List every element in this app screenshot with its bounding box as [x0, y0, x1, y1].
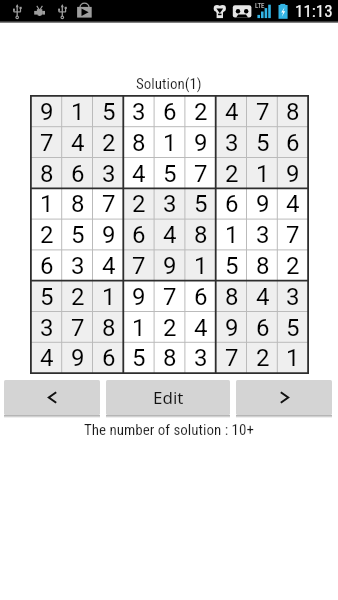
staticText: 1 — [225, 221, 239, 249]
staticText: 4 — [225, 98, 239, 126]
staticText: 8 — [163, 344, 177, 372]
button[interactable]: Edit — [106, 380, 230, 415]
staticText: 2 — [132, 190, 146, 218]
staticText: 3 — [163, 190, 177, 218]
staticText: Edit — [153, 386, 184, 409]
staticText: 7 — [71, 314, 85, 342]
staticText: 8 — [286, 98, 300, 126]
staticText: 1 — [256, 160, 270, 188]
staticText: 2 — [163, 314, 177, 342]
staticText: 9 — [40, 98, 54, 126]
staticText: 9 — [256, 190, 270, 218]
staticText: 9 — [225, 314, 239, 342]
staticText: 2 — [225, 160, 239, 188]
staticText: 9 — [286, 160, 300, 188]
staticText: 3 — [194, 344, 208, 372]
staticText: 8 — [194, 221, 208, 249]
staticText: The number of solution : 10+ — [84, 421, 254, 439]
staticText: 9 — [163, 252, 177, 280]
staticText: 6 — [102, 344, 116, 372]
staticText: 8 — [102, 314, 116, 342]
staticText: 2 — [256, 344, 270, 372]
staticText: 6 — [194, 283, 208, 311]
staticText: 4 — [194, 314, 208, 342]
staticText: 1 — [40, 190, 54, 218]
staticText: 6 — [256, 314, 270, 342]
staticText: 5 — [132, 344, 146, 372]
staticText: 5 — [40, 283, 54, 311]
staticText: 5 — [163, 160, 177, 188]
staticText: 3 — [40, 314, 54, 342]
staticText: 11:13 — [295, 1, 333, 21]
staticText: 4 — [71, 129, 85, 157]
staticText: 4 — [40, 344, 54, 372]
staticText: 7 — [225, 344, 239, 372]
staticText: 7 — [40, 129, 54, 157]
staticText: 7 — [132, 252, 146, 280]
staticText: 4 — [132, 160, 146, 188]
staticText: 3 — [225, 129, 239, 157]
staticText: 6 — [286, 129, 300, 157]
staticText: 2 — [71, 283, 85, 311]
staticText: Solution(1) — [136, 75, 202, 93]
staticText: 1 — [286, 344, 300, 372]
staticText: 3 — [71, 252, 85, 280]
staticText: 6 — [163, 98, 177, 126]
staticText: 1 — [163, 129, 177, 157]
staticText: 6 — [225, 190, 239, 218]
button[interactable]: Next solution — [236, 380, 332, 415]
staticText: 3 — [286, 283, 300, 311]
staticText: 3 — [132, 98, 146, 126]
staticText: 9 — [102, 221, 116, 249]
staticText: 8 — [256, 252, 270, 280]
staticText: 6 — [40, 252, 54, 280]
staticText: 5 — [71, 221, 85, 249]
button[interactable]: Previous solution — [4, 380, 100, 415]
staticText: 9 — [194, 129, 208, 157]
staticText: LTE — [255, 2, 265, 10]
staticText: 9 — [132, 283, 146, 311]
staticText: 1 — [102, 283, 116, 311]
staticText: 8 — [132, 129, 146, 157]
staticText: 6 — [71, 160, 85, 188]
staticText: 7 — [163, 283, 177, 311]
staticText: 7 — [286, 221, 300, 249]
staticText: 7 — [256, 98, 270, 126]
staticText: 1 — [194, 252, 208, 280]
staticText: 4 — [256, 283, 270, 311]
staticText: 8 — [225, 283, 239, 311]
staticText: 5 — [286, 314, 300, 342]
staticText: 4 — [286, 190, 300, 218]
staticText: 5 — [194, 190, 208, 218]
staticText: 4 — [163, 221, 177, 249]
staticText: 5 — [102, 98, 116, 126]
staticText: 6 — [132, 221, 146, 249]
staticText: 8 — [71, 190, 85, 218]
staticText: 8 — [40, 160, 54, 188]
staticText: 3 — [256, 221, 270, 249]
staticText: 4 — [102, 252, 116, 280]
staticText: 2 — [286, 252, 300, 280]
staticText: 1 — [132, 314, 146, 342]
staticText: 2 — [102, 129, 116, 157]
staticText: 7 — [194, 160, 208, 188]
staticText: 2 — [40, 221, 54, 249]
staticText: 3 — [102, 160, 116, 188]
staticText: 5 — [225, 252, 239, 280]
staticText: 9 — [71, 344, 85, 372]
staticText: 2 — [194, 98, 208, 126]
staticText: 5 — [256, 129, 270, 157]
staticText: 1 — [71, 98, 85, 126]
staticText: 7 — [102, 190, 116, 218]
